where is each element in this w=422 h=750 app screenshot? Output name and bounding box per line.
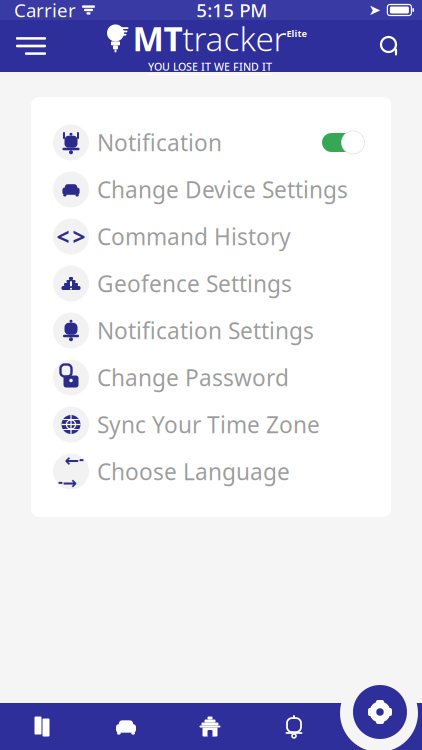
staticText: < <box>56 221 69 251</box>
staticText: Elite <box>286 27 307 40</box>
staticText: > <box>72 221 85 251</box>
button[interactable]: Notification <box>31 119 391 166</box>
staticText: tracker <box>182 16 286 61</box>
staticText: Sync Your Time Zone <box>97 409 320 439</box>
button[interactable]: < <box>31 213 391 260</box>
button[interactable]: Sync Your Time Zone <box>31 401 391 448</box>
button[interactable]: Home <box>168 703 252 750</box>
staticText: → <box>62 473 77 493</box>
staticText: MT <box>132 16 182 61</box>
staticText: Geofence Settings <box>97 268 292 298</box>
staticText: 5:15 PM <box>196 0 267 22</box>
button[interactable]: Vehicles <box>84 703 168 750</box>
staticText: ← <box>64 450 79 470</box>
button[interactable]: Change Device Settings <box>31 166 391 213</box>
staticText: Notification <box>97 127 222 157</box>
staticText: YOU LOSE IT WE FIND IT <box>148 59 272 74</box>
button[interactable]: Settings <box>347 679 413 745</box>
button[interactable]: ← <box>31 448 391 495</box>
staticText: Change Password <box>97 362 289 392</box>
button[interactable]: Change Password <box>31 354 391 401</box>
staticText: Notification Settings <box>97 315 314 345</box>
button[interactable]: Notification Settings <box>31 307 391 354</box>
button[interactable]: Search <box>366 22 414 70</box>
button[interactable]: Map <box>0 703 84 750</box>
staticText: Command History <box>97 221 291 251</box>
staticText: Carrier <box>14 0 76 22</box>
staticText: Choose Language <box>97 456 290 486</box>
button[interactable]: Alerts <box>252 703 336 750</box>
staticText: ➤ <box>368 2 380 18</box>
button[interactable]: Geofence Settings <box>31 260 391 307</box>
staticText: Change Device Settings <box>97 174 348 204</box>
button[interactable]: Menu <box>8 22 54 70</box>
